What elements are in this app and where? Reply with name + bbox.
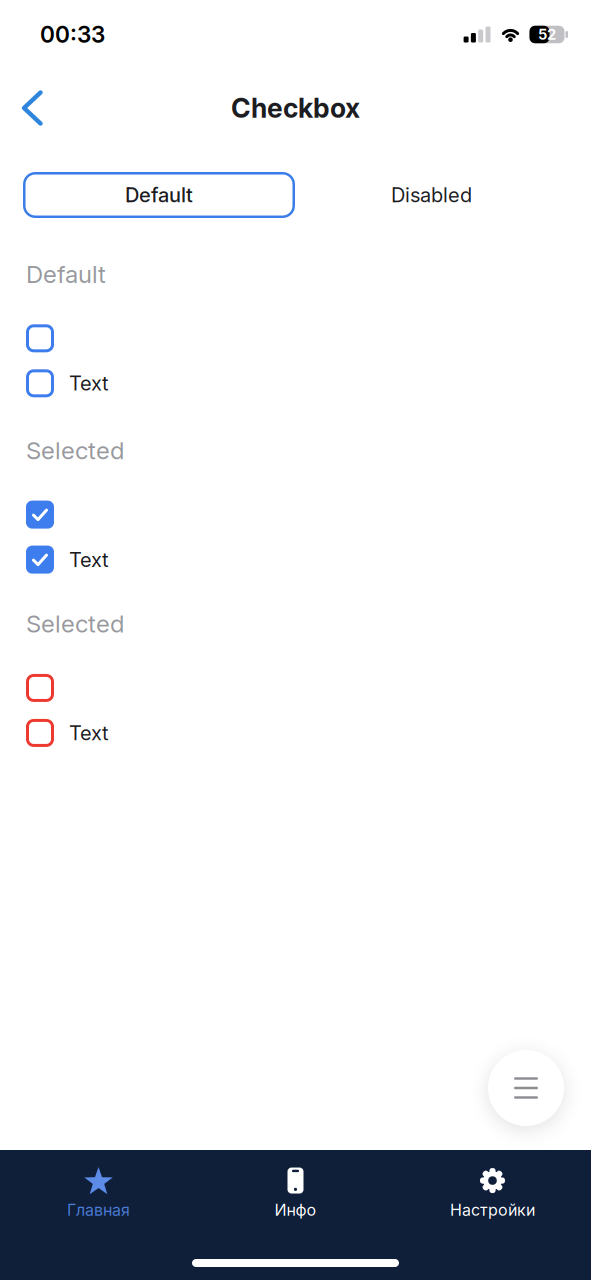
- staticText: Default: [125, 183, 193, 207]
- button[interactable]: Text: [26, 369, 109, 397]
- staticText: Disabled: [391, 183, 472, 207]
- staticText: Главная: [67, 1201, 130, 1219]
- staticText: 52: [538, 26, 556, 43]
- button[interactable]: Text: [26, 546, 109, 574]
- button[interactable]: Disabled: [295, 172, 568, 218]
- button[interactable]: Инфо: [197, 1162, 394, 1224]
- staticText: Checkbox: [231, 92, 360, 124]
- staticText: 00:33: [40, 21, 105, 48]
- staticText: Text: [69, 548, 109, 571]
- button[interactable]: Главная: [0, 1162, 197, 1224]
- staticText: Инфо: [274, 1201, 316, 1219]
- button[interactable]: Text: [26, 719, 109, 747]
- staticText: Text: [69, 721, 109, 745]
- button[interactable]: Back: [0, 90, 45, 126]
- button[interactable]: Menu: [488, 1050, 564, 1126]
- staticText: Selected: [26, 610, 124, 638]
- staticText: Настройки: [450, 1201, 535, 1219]
- staticText: Text: [69, 371, 109, 395]
- staticText: Default: [26, 260, 106, 288]
- button[interactable]: Checkbox: [26, 501, 54, 529]
- button[interactable]: Checkbox: [26, 674, 54, 702]
- staticText: Selected: [26, 436, 124, 465]
- button[interactable]: Checkbox: [26, 324, 54, 352]
- button[interactable]: Default: [23, 172, 295, 218]
- button[interactable]: Настройки: [394, 1162, 591, 1224]
